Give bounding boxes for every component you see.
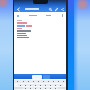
button[interactable] [38, 87, 43, 89]
button[interactable] [28, 84, 33, 86]
button[interactable] [43, 84, 48, 86]
button[interactable] [29, 13, 37, 18]
button[interactable] [23, 84, 28, 86]
button[interactable]: Share [59, 6, 65, 12]
button[interactable] [46, 13, 51, 18]
button[interactable] [26, 80, 31, 83]
button[interactable] [53, 84, 58, 86]
button[interactable] [53, 87, 58, 89]
button[interactable] [61, 80, 66, 83]
button[interactable] [32, 75, 42, 79]
button[interactable] [28, 87, 33, 89]
button[interactable] [48, 87, 53, 89]
button[interactable]: Back [15, 6, 21, 12]
button[interactable] [58, 84, 63, 86]
button[interactable] [41, 80, 46, 83]
button[interactable] [14, 80, 20, 83]
button[interactable] [20, 80, 26, 83]
button[interactable] [43, 87, 48, 89]
button[interactable] [51, 80, 56, 83]
button[interactable] [48, 84, 53, 86]
button[interactable] [31, 80, 36, 83]
button[interactable] [33, 84, 38, 86]
button[interactable] [18, 84, 23, 86]
button[interactable] [36, 80, 41, 83]
button[interactable]: Translate [15, 13, 20, 18]
button[interactable]: More options [60, 13, 65, 18]
button[interactable]: Search [47, 6, 53, 12]
button[interactable] [33, 87, 38, 89]
button[interactable] [23, 87, 28, 89]
button[interactable] [46, 80, 51, 83]
button[interactable] [56, 80, 61, 83]
button[interactable] [38, 84, 43, 86]
button[interactable]: Edit [53, 6, 59, 12]
